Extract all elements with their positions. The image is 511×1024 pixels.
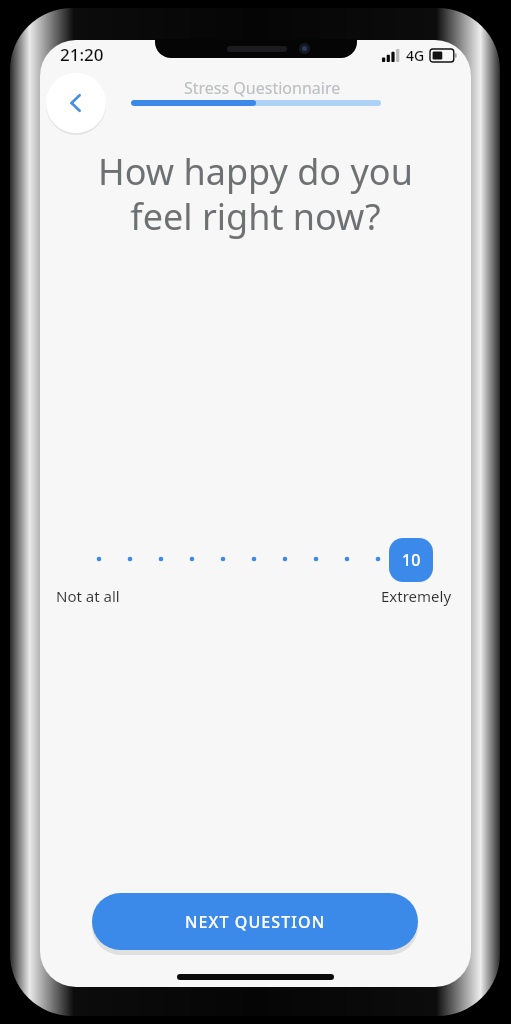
- button[interactable]: NEXT QUESTION: [92, 893, 418, 950]
- staticText: 21:20: [60, 43, 104, 66]
- staticText: 4G: [406, 46, 425, 65]
- staticText: 10: [402, 549, 421, 571]
- staticText: Not at all: [56, 586, 120, 606]
- button[interactable]: Back: [46, 73, 106, 133]
- staticText: Extremely: [381, 586, 452, 606]
- staticText: How happy do you feel right now?: [54, 147, 457, 240]
- button[interactable]: Rating 10: [389, 538, 433, 582]
- staticText: NEXT QUESTION: [185, 911, 326, 933]
- staticText: Stress Questionnaire: [184, 77, 341, 99]
